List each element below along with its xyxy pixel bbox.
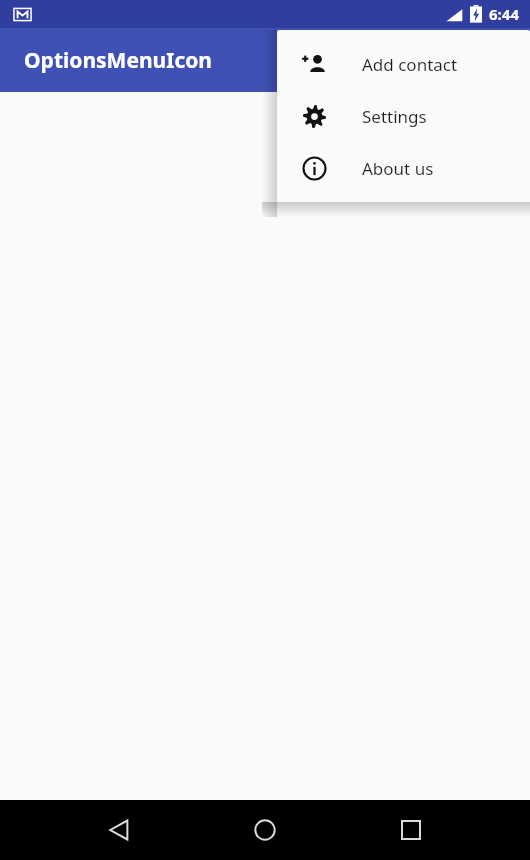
button[interactable]: Recent apps <box>384 803 438 857</box>
staticText: About us <box>362 157 434 180</box>
button[interactable]: About us <box>277 142 530 194</box>
staticText: Add contact <box>362 53 458 76</box>
staticText: 6:44 <box>489 4 519 24</box>
staticText: Settings <box>362 105 427 128</box>
button[interactable]: Home <box>238 803 292 857</box>
button[interactable]: Settings <box>277 90 530 142</box>
button[interactable]: Back <box>92 803 146 857</box>
button[interactable]: Add contact <box>277 38 530 90</box>
staticText: OptionsMenuIcon <box>24 46 213 75</box>
